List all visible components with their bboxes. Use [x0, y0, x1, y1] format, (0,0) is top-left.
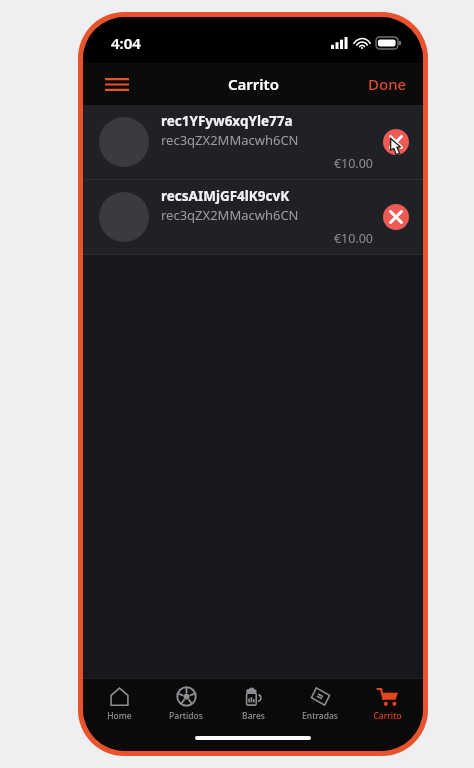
button[interactable]: Remove item	[379, 125, 413, 159]
staticText: rec1YFyw6xqYle77a	[161, 112, 293, 130]
button[interactable]: Entradas	[289, 679, 351, 729]
button[interactable]: rec1YFyw6xqYle77a	[83, 105, 423, 179]
staticText: Carrito	[373, 710, 402, 722]
staticText: Home	[107, 710, 132, 722]
staticText: recsAIMjGF4lK9cvK	[161, 187, 290, 205]
button[interactable]: Menu	[97, 64, 137, 104]
button[interactable]: Carrito	[356, 679, 418, 729]
staticText: 4:04	[111, 33, 141, 53]
staticText: Entradas	[302, 710, 338, 722]
staticText: Bares	[242, 710, 265, 722]
staticText: rec3qZX2MMacwh6CN	[161, 206, 299, 224]
button[interactable]: Partidos	[155, 679, 217, 729]
button[interactable]: Done	[352, 66, 423, 102]
staticText: Done	[368, 74, 407, 94]
staticText: Partidos	[169, 710, 203, 722]
button[interactable]: Home	[88, 679, 150, 729]
staticText: €10.00	[161, 155, 373, 172]
staticText: rec3qZX2MMacwh6CN	[161, 131, 299, 149]
button[interactable]: Bares	[222, 679, 284, 729]
staticText: Carrito	[228, 74, 279, 94]
staticText: €10.00	[161, 230, 373, 247]
button[interactable]: Remove item	[379, 200, 413, 234]
button[interactable]: recsAIMjGF4lK9cvK	[83, 180, 423, 254]
